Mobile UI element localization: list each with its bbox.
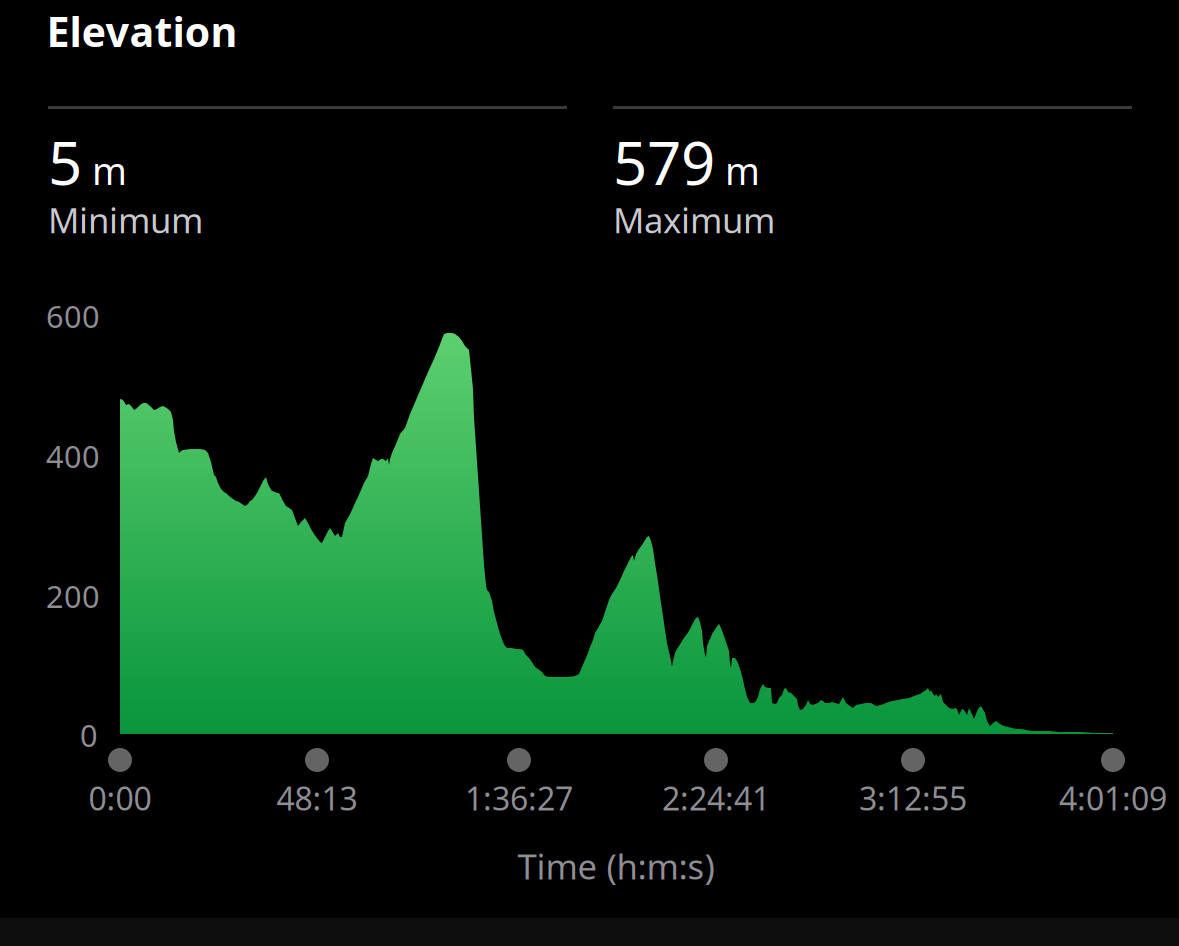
staticText: 4:01:09 — [1059, 777, 1167, 819]
staticText: 1:36:27 — [465, 777, 573, 819]
staticText: Maximum — [613, 197, 775, 243]
staticText: 400 — [46, 436, 100, 476]
staticText: 600 — [46, 296, 100, 336]
staticText: 0:00 — [88, 777, 151, 819]
staticText: 0 — [80, 715, 98, 755]
staticText: 48:13 — [276, 777, 357, 819]
staticText: 5 — [48, 122, 82, 202]
staticText: m — [92, 146, 127, 195]
staticText: Elevation — [46, 4, 237, 58]
staticText: Minimum — [48, 197, 203, 243]
staticText: 200 — [46, 576, 100, 616]
staticText: 579 — [613, 122, 715, 202]
button[interactable]: 579 — [613, 106, 1132, 256]
staticText: Time (h:m:s) — [517, 843, 714, 889]
button[interactable]: Elevation chart — [0, 280, 1179, 898]
staticText: m — [725, 146, 760, 195]
button[interactable]: 5 — [48, 106, 567, 256]
staticText: 3:12:55 — [859, 777, 967, 819]
staticText: 2:24:41 — [662, 777, 770, 819]
